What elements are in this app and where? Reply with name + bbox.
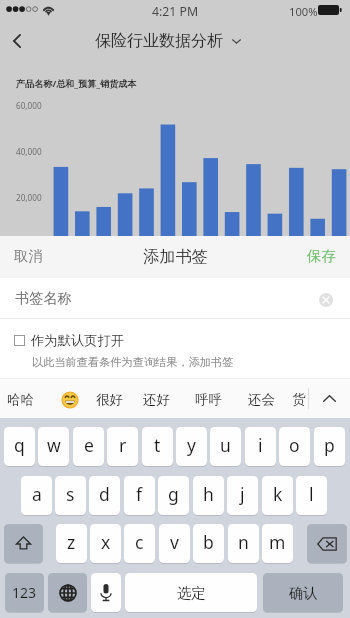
- staticText: z: [67, 530, 76, 554]
- button[interactable]: w: [38, 427, 69, 466]
- button[interactable]: Voice input: [91, 573, 121, 612]
- button[interactable]: 作为默认页打开: [0, 327, 350, 353]
- button[interactable]: d: [89, 476, 120, 515]
- staticText: h: [203, 482, 214, 506]
- staticText: j: [240, 482, 245, 506]
- button[interactable]: Clear text: [319, 293, 333, 307]
- staticText: x: [101, 530, 111, 554]
- button[interactable]: e: [73, 427, 104, 466]
- staticText: n: [238, 530, 249, 554]
- button[interactable]: 还会: [248, 391, 275, 408]
- button[interactable]: 取消: [4, 239, 54, 273]
- button[interactable]: j: [227, 476, 258, 515]
- button[interactable]: o: [279, 427, 310, 466]
- button[interactable]: r: [107, 427, 138, 466]
- button[interactable]: m: [262, 524, 293, 563]
- button[interactable]: h: [193, 476, 224, 515]
- staticText: u: [220, 433, 231, 457]
- staticText: f: [136, 482, 143, 506]
- staticText: o: [289, 433, 300, 457]
- button[interactable]: g: [158, 476, 189, 515]
- button[interactable]: 哈哈: [7, 391, 34, 408]
- button[interactable]: Expand suggestions: [309, 379, 350, 418]
- staticText: s: [66, 482, 75, 506]
- staticText: 产品名称/总和_预算_销货成本: [16, 77, 137, 89]
- staticText: w: [47, 433, 61, 457]
- staticText: v: [170, 530, 179, 554]
- button[interactable]: b: [193, 524, 224, 563]
- button[interactable]: Backspace: [307, 524, 347, 563]
- staticText: y: [187, 433, 196, 457]
- button[interactable]: c: [124, 524, 155, 563]
- staticText: 添加书签: [143, 246, 208, 266]
- staticText: e: [84, 433, 94, 457]
- staticText: l: [309, 482, 314, 506]
- staticText: m: [269, 530, 286, 554]
- staticText: q: [14, 433, 25, 457]
- button[interactable]: 123: [5, 573, 44, 612]
- button[interactable]: 很好: [96, 391, 123, 408]
- staticText: 选定: [177, 584, 206, 602]
- staticText: 保险行业数据分析: [95, 31, 223, 51]
- button[interactable]: t: [142, 427, 173, 466]
- staticText: p: [324, 433, 335, 457]
- staticText: k: [273, 482, 283, 506]
- button[interactable]: y: [176, 427, 207, 466]
- staticText: 货币: [292, 391, 308, 408]
- staticText: 以此当前查看条件为查询结果，添加书签: [32, 355, 234, 369]
- staticText: b: [203, 530, 214, 554]
- button[interactable]: a: [21, 476, 52, 515]
- staticText: c: [135, 530, 144, 554]
- button[interactable]: 确认: [263, 573, 343, 612]
- staticText: t: [154, 433, 161, 457]
- staticText: 作为默认页打开: [31, 332, 125, 349]
- button[interactable]: u: [210, 427, 241, 466]
- button[interactable]: Emoji: [62, 392, 78, 408]
- staticText: 4:21 PM: [152, 3, 199, 20]
- button[interactable]: k: [262, 476, 293, 515]
- button[interactable]: z: [56, 524, 87, 563]
- button[interactable]: l: [296, 476, 327, 515]
- staticText: d: [99, 482, 110, 506]
- staticText: a: [32, 482, 42, 506]
- staticText: 123: [12, 583, 37, 602]
- staticText: r: [119, 433, 127, 457]
- button[interactable]: Change language: [48, 573, 87, 612]
- staticText: 取消: [14, 247, 44, 265]
- staticText: g: [168, 482, 179, 506]
- staticText: 40,000: [16, 146, 42, 157]
- button[interactable]: p: [314, 427, 345, 466]
- button[interactable]: 选定: [125, 573, 257, 612]
- staticText: 100%: [289, 4, 318, 19]
- button[interactable]: 添加书签: [132, 239, 218, 273]
- staticText: 20,000: [16, 192, 42, 203]
- button[interactable]: 还好: [143, 391, 170, 408]
- staticText: 保存: [307, 247, 336, 265]
- staticText: 书签名称: [15, 289, 72, 307]
- button[interactable]: s: [55, 476, 86, 515]
- button[interactable]: Shift: [4, 524, 43, 563]
- button[interactable]: n: [228, 524, 259, 563]
- button[interactable]: i: [245, 427, 276, 466]
- staticText: 60,000: [16, 100, 42, 111]
- button[interactable]: v: [159, 524, 190, 563]
- button[interactable]: q: [4, 427, 35, 466]
- button[interactable]: x: [90, 524, 121, 563]
- button[interactable]: 呼呼: [195, 391, 222, 408]
- button[interactable]: Back: [0, 22, 34, 59]
- button[interactable]: f: [124, 476, 155, 515]
- staticText: i: [258, 433, 263, 457]
- button[interactable]: 保险行业数据分析: [95, 31, 241, 51]
- staticText: 确认: [289, 584, 318, 602]
- button[interactable]: 保存: [296, 239, 346, 273]
- button[interactable]: 书签名称: [0, 278, 350, 318]
